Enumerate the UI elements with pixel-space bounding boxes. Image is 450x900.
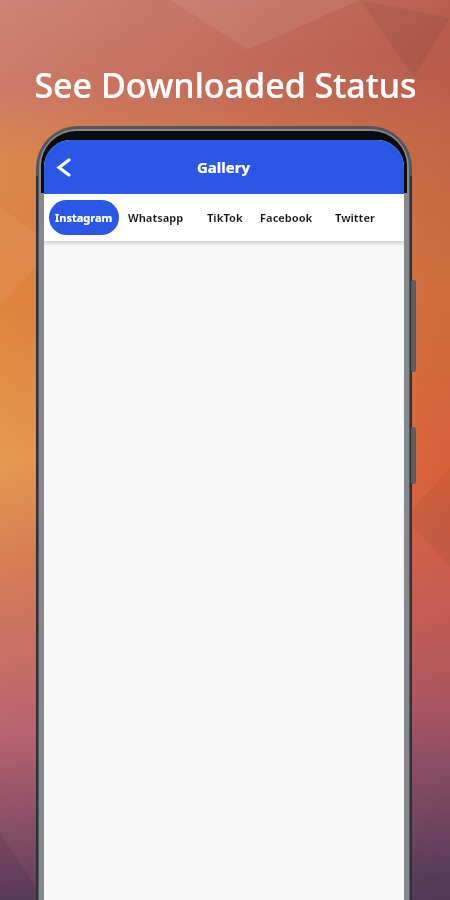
button[interactable] xyxy=(50,153,78,181)
staticText: TikTok xyxy=(207,210,243,225)
staticText: See Downloaded Status xyxy=(34,62,417,108)
staticText: Twitter xyxy=(335,210,375,225)
staticText: Whatsapp xyxy=(128,210,184,225)
button[interactable]: TikTok xyxy=(191,194,259,241)
staticText: Gallery xyxy=(197,157,251,177)
staticText: Instagram xyxy=(55,210,113,225)
button[interactable]: Twitter xyxy=(321,194,389,241)
staticText: Facebook xyxy=(260,210,313,225)
button[interactable]: Facebook xyxy=(252,194,320,241)
button[interactable]: Whatsapp xyxy=(122,194,190,241)
button[interactable]: Instagram xyxy=(49,200,119,235)
